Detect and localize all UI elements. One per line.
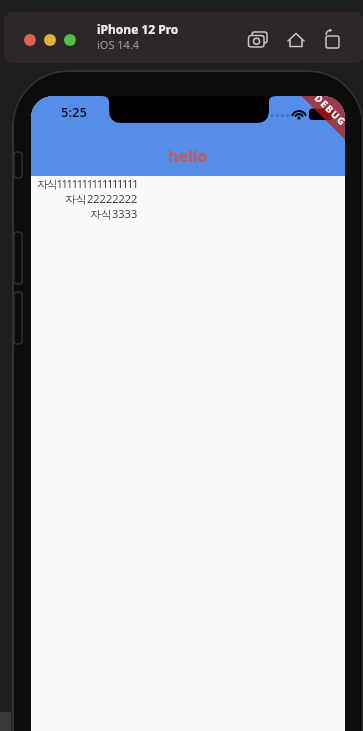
- button[interactable]: [248, 24, 276, 52]
- button[interactable]: [64, 34, 76, 46]
- staticText: 자식22222222: [65, 191, 138, 206]
- button[interactable]: [320, 24, 348, 52]
- button[interactable]: [44, 34, 56, 46]
- staticText: DEBUG: [312, 96, 345, 129]
- staticText: 자식1111111111111111: [37, 176, 138, 191]
- button[interactable]: [24, 34, 36, 46]
- staticText: iOS 14.4: [97, 37, 140, 52]
- staticText: iPhone 12 Pro: [97, 21, 179, 37]
- staticText: 자식3333: [90, 206, 138, 221]
- button[interactable]: [284, 24, 312, 52]
- staticText: 5:25: [61, 103, 87, 121]
- staticText: hello: [168, 145, 208, 167]
